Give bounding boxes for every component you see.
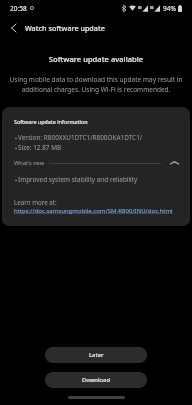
staticText: Improved system stability and reliabilit… <box>18 175 138 184</box>
staticText: Using mobile data to download this updat… <box>8 75 184 94</box>
staticText: 94% <box>163 4 176 13</box>
staticText: Learn more at: <box>14 198 57 206</box>
staticText: Later <box>89 351 104 359</box>
staticText: Watch software update <box>25 23 105 33</box>
button[interactable]: Download <box>45 372 147 388</box>
staticText: Size: 12.87 MB <box>18 143 62 152</box>
staticText: 20:58 <box>10 4 27 13</box>
staticText: Software update information <box>14 118 88 125</box>
button[interactable]: Navigate up <box>0 16 25 40</box>
staticText: Software update available <box>0 54 192 64</box>
staticText: Download <box>82 376 110 384</box>
button[interactable]: https://doc.samsungmobile.com/SM-R800/IN… <box>14 207 173 215</box>
button[interactable]: What's new <box>14 159 180 167</box>
staticText: Version: R800XXU1DTC1/R800OKA1DTC1/ <box>18 133 143 142</box>
staticText: What's new <box>14 159 45 167</box>
button[interactable]: Later <box>45 347 147 363</box>
